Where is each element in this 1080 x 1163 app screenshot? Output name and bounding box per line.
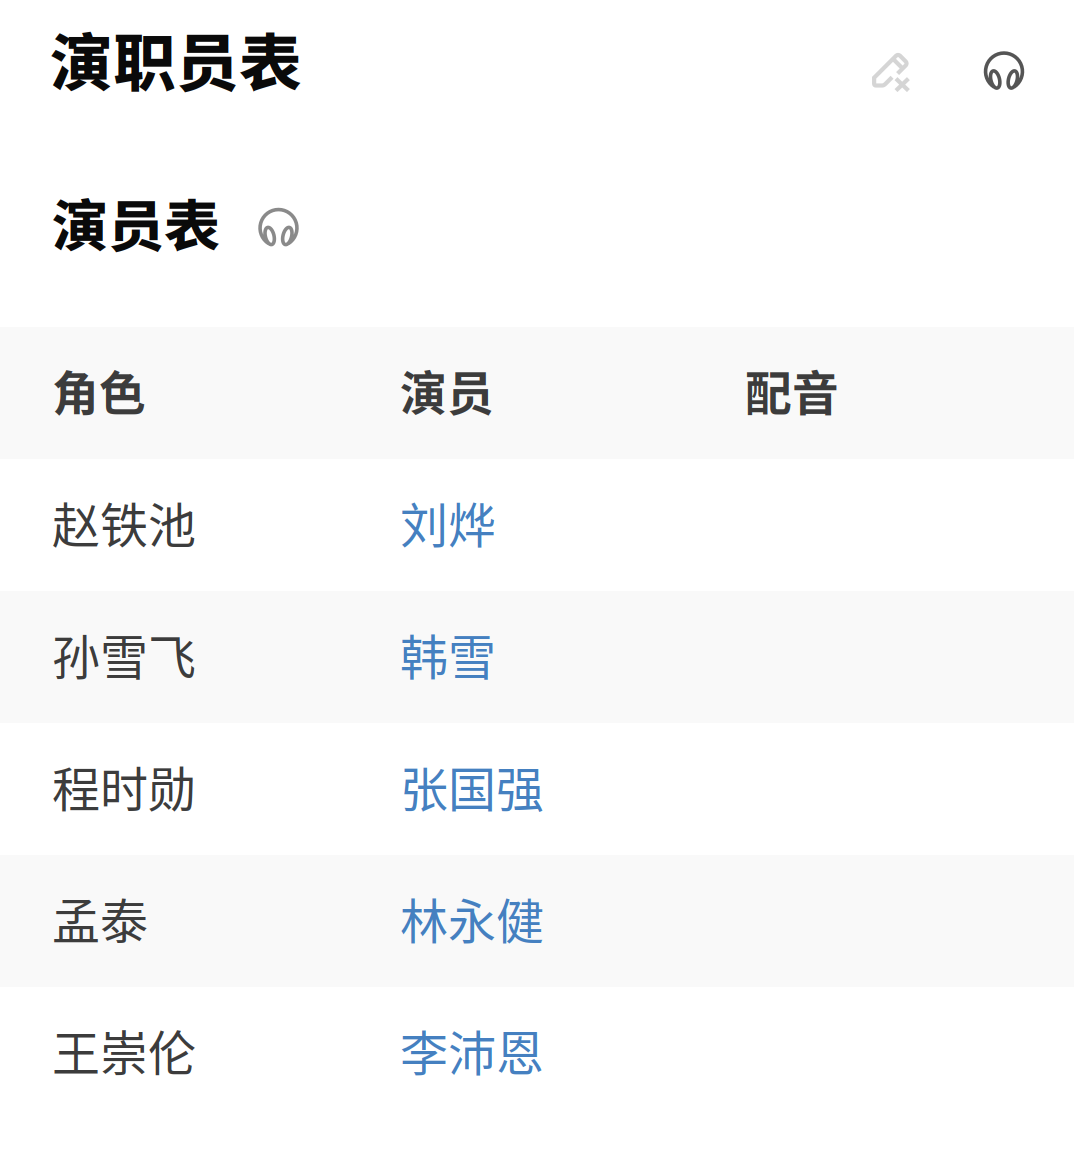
staticText: 李沛恩 bbox=[400, 1015, 544, 1085]
button[interactable]: Listen to cast list bbox=[258, 201, 299, 242]
staticText: 王崇伦 bbox=[52, 1015, 196, 1085]
staticText: 配音 bbox=[745, 356, 839, 424]
staticText: 张国强 bbox=[400, 751, 544, 821]
staticText: 刘烨 bbox=[400, 487, 496, 557]
staticText: 韩雪 bbox=[400, 619, 496, 689]
staticText: 林永健 bbox=[400, 883, 544, 953]
button[interactable]: Edit bbox=[844, 25, 936, 117]
staticText: 演员 bbox=[400, 356, 494, 424]
staticText: 演员表 bbox=[52, 181, 220, 263]
staticText: 程时勋 bbox=[52, 751, 196, 821]
staticText: 角色 bbox=[52, 356, 146, 424]
staticText: 孙雪飞 bbox=[52, 619, 196, 689]
button[interactable]: Listen bbox=[958, 25, 1050, 117]
staticText: 孟泰 bbox=[52, 883, 148, 953]
staticText: 赵铁池 bbox=[52, 487, 196, 557]
staticText: 演职员表 bbox=[50, 13, 302, 104]
